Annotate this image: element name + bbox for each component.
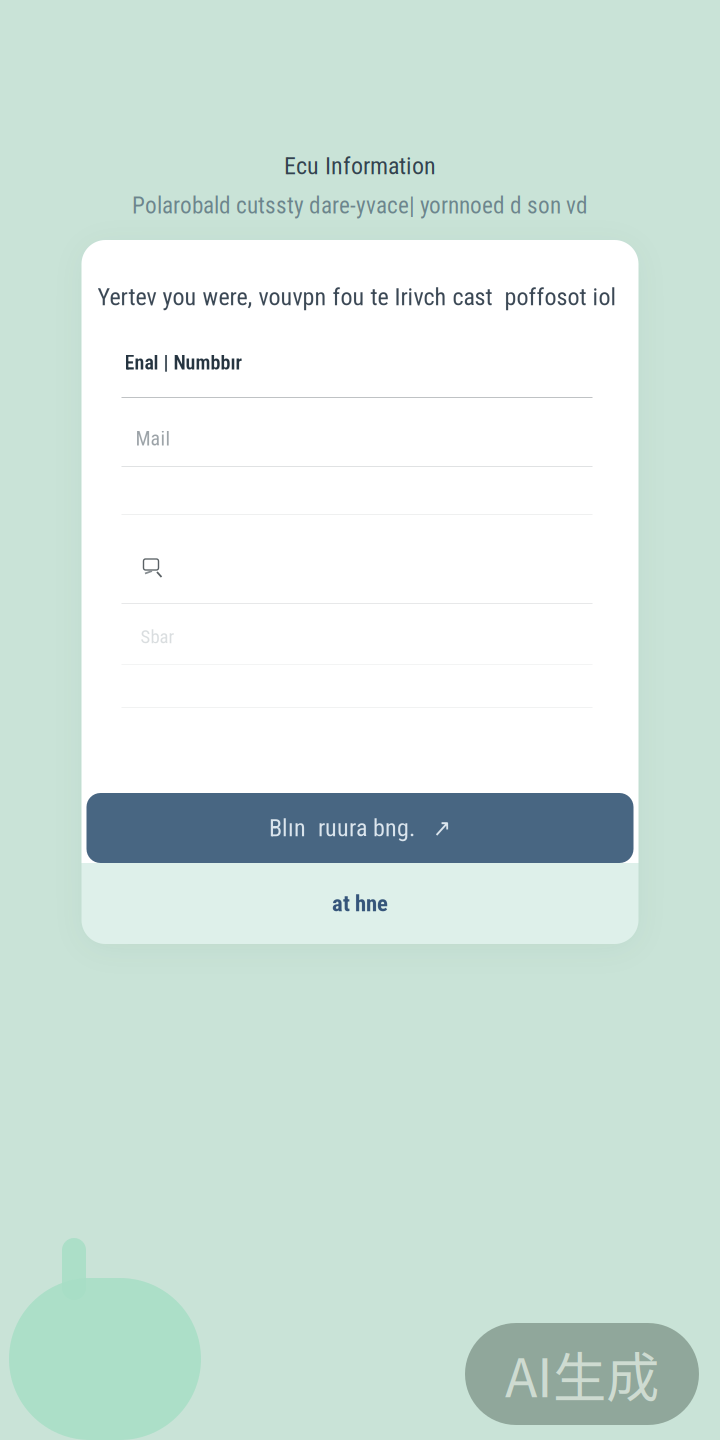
staticText: Enal | Numbbır [124,351,241,374]
staticText: at hne [332,890,388,917]
staticText: Yertev you were, vouvpn fou te Irivch ca… [97,283,616,311]
button[interactable]: Blın ruura bng. ↗ [86,793,633,863]
staticText: Sbar [140,626,174,648]
staticText: Mail [135,427,170,450]
staticText: AI生成 [505,1335,659,1413]
button[interactable]: at hne [81,863,638,944]
staticText: Ecu Information [284,152,436,180]
staticText: Blın ruura bng. ↗ [269,814,451,842]
staticText: Polarobald cutssty dare-yvace| yornnoed … [132,192,588,219]
button[interactable]: Enal | Numbbır [81,240,241,374]
